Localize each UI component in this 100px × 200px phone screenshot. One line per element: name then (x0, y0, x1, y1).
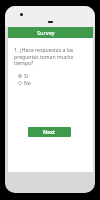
button[interactable]: No (18, 80, 38, 85)
button[interactable]: Survey (8, 27, 93, 38)
staticText: Survey (37, 29, 55, 36)
staticText: Next (43, 129, 56, 136)
staticText: No (24, 80, 31, 85)
staticText: 1. ¿Hace respuestas a las preguntas toma… (14, 47, 84, 66)
button[interactable]: Sí (18, 73, 38, 78)
button[interactable]: Next (28, 127, 71, 137)
staticText: Sí (24, 73, 29, 78)
